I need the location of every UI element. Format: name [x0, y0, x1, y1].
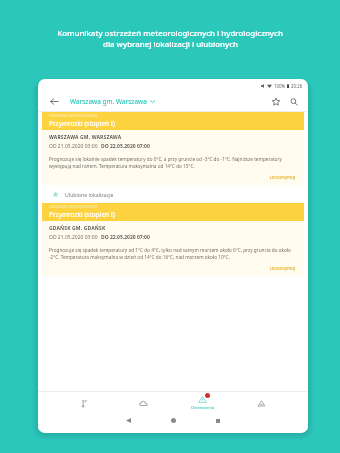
staticText: OD 21.05.2020 03:00	[49, 143, 98, 150]
button[interactable]: Ostrzeżenia	[173, 395, 232, 411]
staticText: Ulubione lokalizacje	[65, 191, 114, 198]
staticText: Komunikaty ostrzeżeń meteorologicznych i…	[57, 28, 283, 39]
button[interactable]: UDOSTĘPNIJ	[269, 174, 297, 181]
staticText: Przymrozki (stopień I)	[49, 210, 115, 219]
staticText: 20:26	[291, 83, 303, 89]
button[interactable]: Recent apps	[203, 411, 233, 430]
button[interactable]: Hydro	[232, 399, 291, 408]
button[interactable]: UDOSTĘPNIJ	[269, 265, 297, 272]
staticText: Prognozuje się lokalnie spadek temperatu…	[49, 156, 297, 170]
button[interactable]: Prognoza	[114, 399, 173, 408]
button[interactable]: Home	[158, 411, 188, 430]
staticText: DO 22.05.2020 07:00	[101, 234, 150, 241]
button[interactable]: Search	[286, 94, 301, 109]
button[interactable]: Temperatura	[55, 399, 114, 408]
button[interactable]: Ulubione lokalizacje	[38, 185, 308, 203]
staticText: UDOSTĘPNIJ	[270, 175, 296, 180]
staticText: OSTRZEŻENIE METEOROLOGICZNE	[49, 114, 98, 118]
staticText: WARSZAWA GM. WARSZAWA	[49, 134, 122, 141]
button[interactable]: Add to favourites	[268, 94, 283, 109]
button[interactable]: Back	[46, 93, 62, 109]
staticText: GDAŃSK GM. GDAŃSK	[49, 225, 106, 232]
staticText: 100%	[274, 83, 286, 89]
staticText: Prognozuje się spadek temperatury od 1°C…	[49, 247, 297, 261]
staticText: dla wybranej lokalizacji i ulubionych	[103, 39, 238, 50]
staticText: UDOSTĘPNIJ	[270, 266, 296, 271]
staticText: Warszawa gm. Warszawa	[70, 97, 147, 106]
staticText: OD 21.05.2020 03:00	[49, 234, 98, 241]
button[interactable]: Back	[113, 411, 143, 430]
staticText: Ostrzeżenia	[191, 405, 215, 411]
staticText: DO 22.05.2020 07:00	[101, 143, 150, 150]
staticText: Przymrozki (stopień I)	[49, 119, 115, 128]
staticText: OSTRZEŻENIE METEOROLOGICZNE	[49, 205, 98, 209]
